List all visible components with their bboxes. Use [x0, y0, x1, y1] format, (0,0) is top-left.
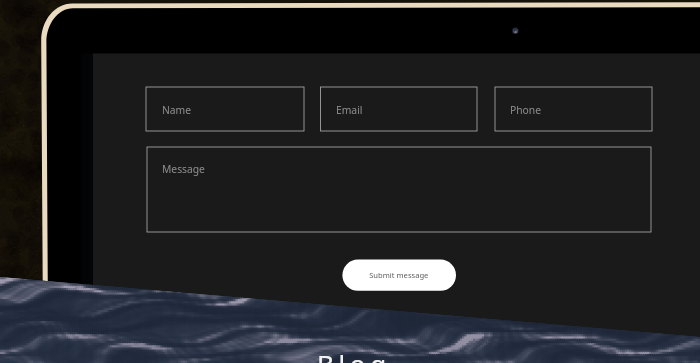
button[interactable]: Contact form screenshot [0, 0, 700, 363]
